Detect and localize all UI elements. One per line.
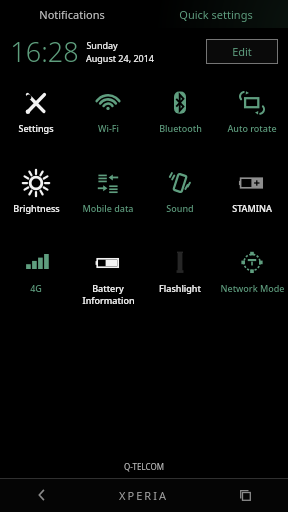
staticText: Mobile data	[82, 202, 134, 214]
staticText: Notifications	[39, 7, 105, 22]
button[interactable]: Recent apps	[203, 478, 288, 512]
staticText: Q-TELCOM	[124, 461, 164, 472]
staticText: Sound	[166, 202, 194, 214]
button[interactable]: Network Mode	[216, 240, 288, 320]
button[interactable]: STAMINA	[216, 160, 288, 240]
button[interactable]: Settings	[0, 80, 72, 160]
staticText: STAMINA	[232, 202, 272, 214]
button[interactable]: Mobile data	[72, 160, 144, 240]
staticText: Auto rotate	[227, 122, 277, 134]
staticText: Bluetooth	[159, 122, 202, 134]
button[interactable]: Battery	[72, 240, 144, 320]
button[interactable]: XPERIA	[84, 478, 203, 512]
staticText: Information	[82, 294, 135, 306]
button[interactable]: Notifications	[0, 0, 144, 28]
button[interactable]: Edit	[206, 39, 278, 64]
staticText: Network Mode	[220, 282, 285, 294]
button[interactable]: Bluetooth	[144, 80, 216, 160]
button[interactable]: Auto rotate	[216, 80, 288, 160]
staticText: Battery	[92, 282, 124, 294]
staticText: 4G	[30, 282, 42, 294]
button[interactable]: Sound	[144, 160, 216, 240]
staticText: Quick settings	[179, 7, 253, 22]
button[interactable]: Back	[0, 478, 84, 512]
staticText: August 24, 2014	[86, 52, 154, 64]
staticText: Sunday	[86, 39, 118, 51]
button[interactable]: Wi-Fi	[72, 80, 144, 160]
staticText: Wi-Fi	[98, 122, 119, 134]
staticText: XPERIA	[119, 488, 168, 503]
button[interactable]: Quick settings	[144, 0, 288, 28]
button[interactable]: 4G	[0, 240, 72, 320]
staticText: Settings	[18, 122, 54, 134]
button[interactable]: Flashlight	[144, 240, 216, 320]
staticText: 16:28	[10, 33, 79, 70]
staticText: Edit	[232, 44, 252, 59]
button[interactable]: Brightness	[0, 160, 72, 240]
staticText: Flashlight	[159, 282, 201, 294]
staticText: Brightness	[13, 202, 60, 214]
